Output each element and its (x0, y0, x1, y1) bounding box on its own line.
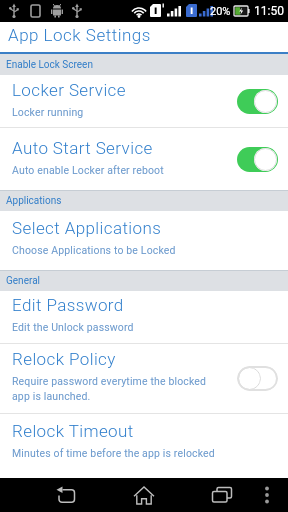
staticText: Edit the Unlock password (12, 321, 134, 333)
staticText: Select Applications (12, 218, 162, 238)
staticText: General (6, 275, 41, 287)
staticText: Applications (6, 195, 62, 207)
staticText: App Lock Settings (8, 25, 151, 45)
staticText: Choose Applications to be Locked (12, 244, 176, 256)
staticText: Edit Password (12, 295, 124, 315)
staticText: 20% (210, 5, 231, 18)
staticText: Require password everytime the blocked (12, 375, 207, 387)
staticText: Auto Start Service (12, 138, 153, 158)
button[interactable] (48, 478, 84, 512)
button[interactable] (204, 478, 240, 512)
staticText: Relock Timeout (12, 421, 134, 441)
button[interactable] (257, 478, 277, 512)
staticText: Enable Lock Screen (6, 59, 93, 71)
button[interactable]: Auto Start Service (0, 128, 288, 190)
button[interactable] (124, 478, 164, 512)
button[interactable] (237, 147, 278, 172)
button[interactable]: Edit Password (0, 291, 288, 343)
staticText: Auto enable Locker after reboot (12, 164, 164, 176)
staticText: Minutes of time before the app is relock… (12, 447, 215, 459)
staticText: Locker running (12, 106, 84, 118)
staticText: 11:50 (254, 4, 284, 18)
staticText: Locker Service (12, 80, 126, 100)
button[interactable] (237, 366, 278, 391)
button[interactable]: Relock Timeout (0, 414, 288, 478)
button[interactable]: Relock Policy (0, 344, 288, 413)
staticText: app is launched. (12, 390, 91, 402)
button[interactable] (237, 89, 278, 114)
button[interactable]: Select Applications (0, 211, 288, 270)
staticText: Relock Policy (12, 349, 116, 369)
button[interactable]: Locker Service (0, 75, 288, 127)
